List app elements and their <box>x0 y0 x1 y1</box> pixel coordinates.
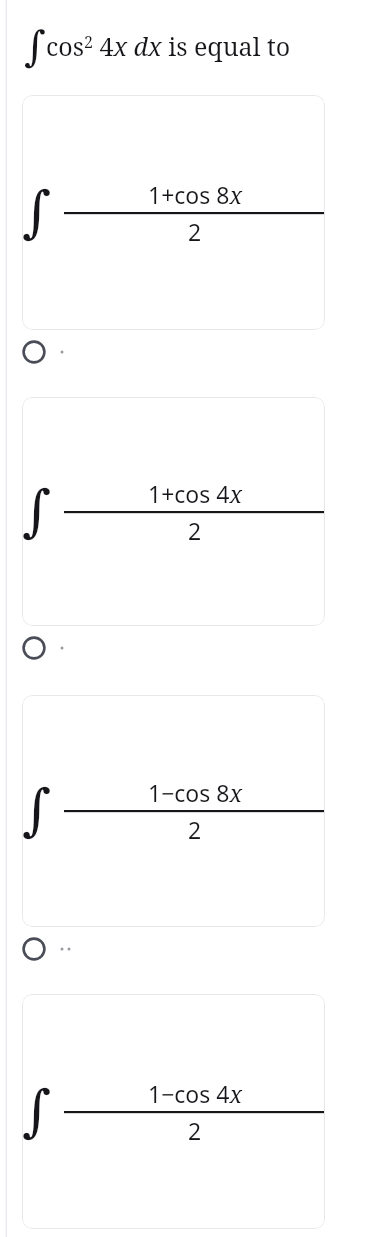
staticText: 2 <box>188 216 202 247</box>
staticText: 1+cos 8x <box>148 179 242 210</box>
button[interactable]: ∫ <box>22 95 325 330</box>
staticText: cos2 4x dx is equal to <box>46 29 291 63</box>
button[interactable]: ∫ <box>22 994 325 1229</box>
staticText: ∫ <box>22 777 52 842</box>
button[interactable]: Select option <box>22 330 67 374</box>
staticText: 1−cos 4x <box>148 1078 242 1109</box>
button[interactable]: Select option <box>22 626 67 670</box>
staticText: 2 <box>188 1115 202 1146</box>
staticText: 2 <box>188 515 202 546</box>
staticText: ∫ <box>22 1078 52 1143</box>
button[interactable]: ∫ <box>22 695 325 927</box>
staticText: 2 <box>188 814 202 845</box>
staticText: ∫ <box>24 22 46 71</box>
button[interactable]: ∫ <box>22 397 325 626</box>
staticText: ∫ <box>22 478 52 543</box>
staticText: ∫ <box>22 179 52 244</box>
button[interactable]: Select option <box>22 927 74 971</box>
staticText: 1+cos 4x <box>148 478 242 509</box>
staticText: 1−cos 8x <box>148 777 242 808</box>
